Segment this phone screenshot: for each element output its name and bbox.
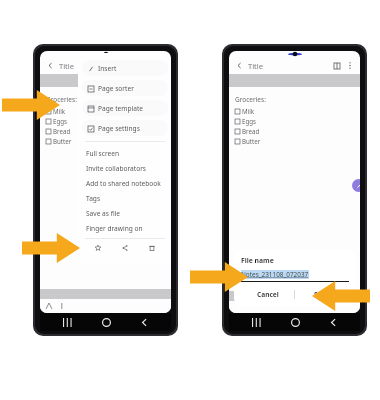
staticText: Full screen: [86, 149, 120, 158]
button[interactable]: Back: [133, 313, 155, 331]
button[interactable]: Page settings: [82, 120, 168, 136]
button[interactable]: Page template: [82, 100, 168, 116]
button[interactable]: Butter: [46, 137, 72, 145]
button[interactable]: Eggs: [46, 117, 68, 125]
button[interactable]: Delete: [145, 241, 159, 255]
button[interactable]: More options: [344, 60, 355, 71]
button[interactable]: Page sorter: [82, 80, 168, 96]
staticText: Save: [314, 290, 330, 299]
staticText: Page settings: [98, 124, 140, 133]
staticText: Page template: [98, 104, 143, 113]
button[interactable]: Back: [234, 60, 245, 71]
button[interactable]: Back: [322, 313, 344, 331]
staticText: Cancel: [257, 290, 279, 299]
button[interactable]: Home: [284, 313, 306, 331]
button[interactable]: Butter: [235, 137, 261, 145]
staticText: Groceries:: [46, 95, 77, 104]
staticText: Insert: [98, 64, 117, 73]
staticText: Bread: [53, 127, 71, 135]
staticText: Milk: [242, 107, 255, 115]
button[interactable]: Home: [95, 313, 117, 331]
staticText: Invite collaborators: [86, 164, 147, 173]
button[interactable]: Milk: [46, 107, 66, 115]
staticText: Save as file: [86, 209, 121, 218]
staticText: Butter: [242, 137, 261, 145]
staticText: Page sorter: [98, 84, 134, 93]
button[interactable]: Bread: [235, 127, 260, 135]
button[interactable]: Tags: [78, 191, 171, 206]
button[interactable]: Insert: [82, 60, 168, 76]
button[interactable]: Add to shared notebook: [78, 176, 171, 191]
staticText: Title: [59, 61, 74, 71]
staticText: Finger drawing on: [86, 224, 143, 233]
button[interactable]: Cancel: [241, 287, 294, 301]
button[interactable]: Invite collaborators: [78, 161, 171, 176]
staticText: Add to shared notebook: [86, 179, 161, 188]
staticText: Notes_231108_072037: [241, 270, 309, 279]
button[interactable]: Notes_231108_072037: [241, 270, 349, 282]
staticText: File name: [241, 256, 274, 265]
button[interactable]: Recents: [56, 313, 78, 331]
button[interactable]: Share: [118, 241, 132, 255]
staticText: Eggs: [53, 117, 68, 125]
staticText: Title: [248, 61, 263, 71]
staticText: Milk: [53, 107, 66, 115]
staticText: Tags: [86, 194, 101, 203]
staticText: Bread: [242, 127, 260, 135]
button[interactable]: Bread: [46, 127, 71, 135]
staticText: Butter: [53, 137, 72, 145]
button[interactable]: Milk: [235, 107, 255, 115]
button[interactable]: Pen: [352, 179, 360, 192]
button[interactable]: Full screen: [78, 146, 171, 161]
button[interactable]: Eggs: [235, 117, 257, 125]
button[interactable]: Recents: [245, 313, 267, 331]
staticText: Groceries:: [235, 95, 266, 104]
button[interactable]: Back: [45, 60, 56, 71]
button[interactable]: Favorite: [91, 241, 105, 255]
button[interactable]: Save as file: [78, 206, 171, 221]
staticText: Eggs: [242, 117, 257, 125]
button[interactable]: View mode: [331, 60, 342, 71]
button[interactable]: Save: [295, 287, 349, 301]
button[interactable]: Finger drawing on: [78, 221, 171, 236]
